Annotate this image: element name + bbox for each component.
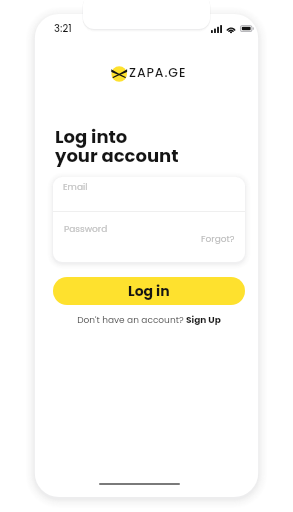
staticText: Email xyxy=(63,181,88,194)
button[interactable]: Email xyxy=(53,177,245,211)
button[interactable]: Don't have an account? Sign Up xyxy=(53,313,245,327)
other: Zapage logo xyxy=(109,64,131,84)
staticText: ZAPA.GE xyxy=(129,64,187,81)
button[interactable]: Password xyxy=(53,212,245,262)
staticText: Log into your account xyxy=(55,124,179,169)
staticText: Forgot? xyxy=(201,233,235,246)
button[interactable]: Log in xyxy=(53,277,245,305)
staticText: Log in xyxy=(128,281,170,301)
staticText: Password xyxy=(64,223,108,236)
staticText: 3:21 xyxy=(54,21,72,35)
other: Status icons xyxy=(211,25,254,33)
button[interactable]: Forgot? xyxy=(196,231,240,248)
staticText: Don't have an account? Sign Up xyxy=(77,314,221,327)
